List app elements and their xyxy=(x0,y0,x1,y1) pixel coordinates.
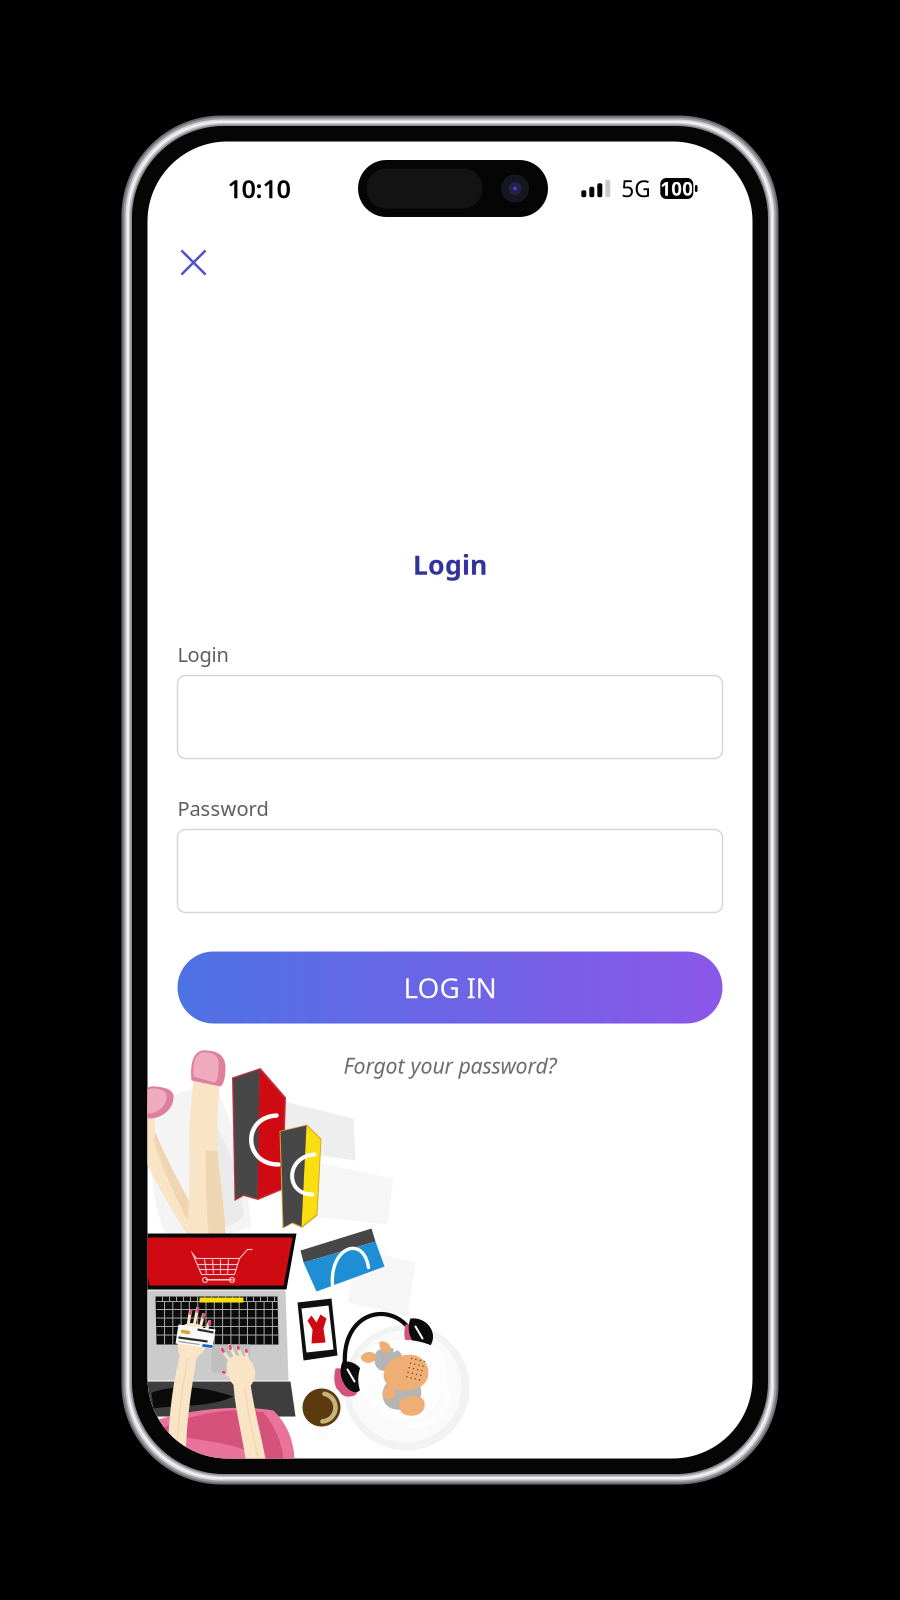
staticText: Forgot your password? xyxy=(343,1051,556,1080)
staticText: LOG IN xyxy=(403,969,496,1006)
button[interactable]: LOG IN xyxy=(177,951,722,1023)
button[interactable]: Close xyxy=(164,233,222,291)
button[interactable]: Forgot your password? xyxy=(177,1048,722,1082)
staticText: Login xyxy=(177,641,228,667)
staticText: 100 xyxy=(660,176,693,201)
staticText: Password xyxy=(177,795,268,821)
staticText: Login xyxy=(413,547,487,582)
staticText: 5G xyxy=(621,173,651,203)
staticText: 10:10 xyxy=(227,172,290,205)
